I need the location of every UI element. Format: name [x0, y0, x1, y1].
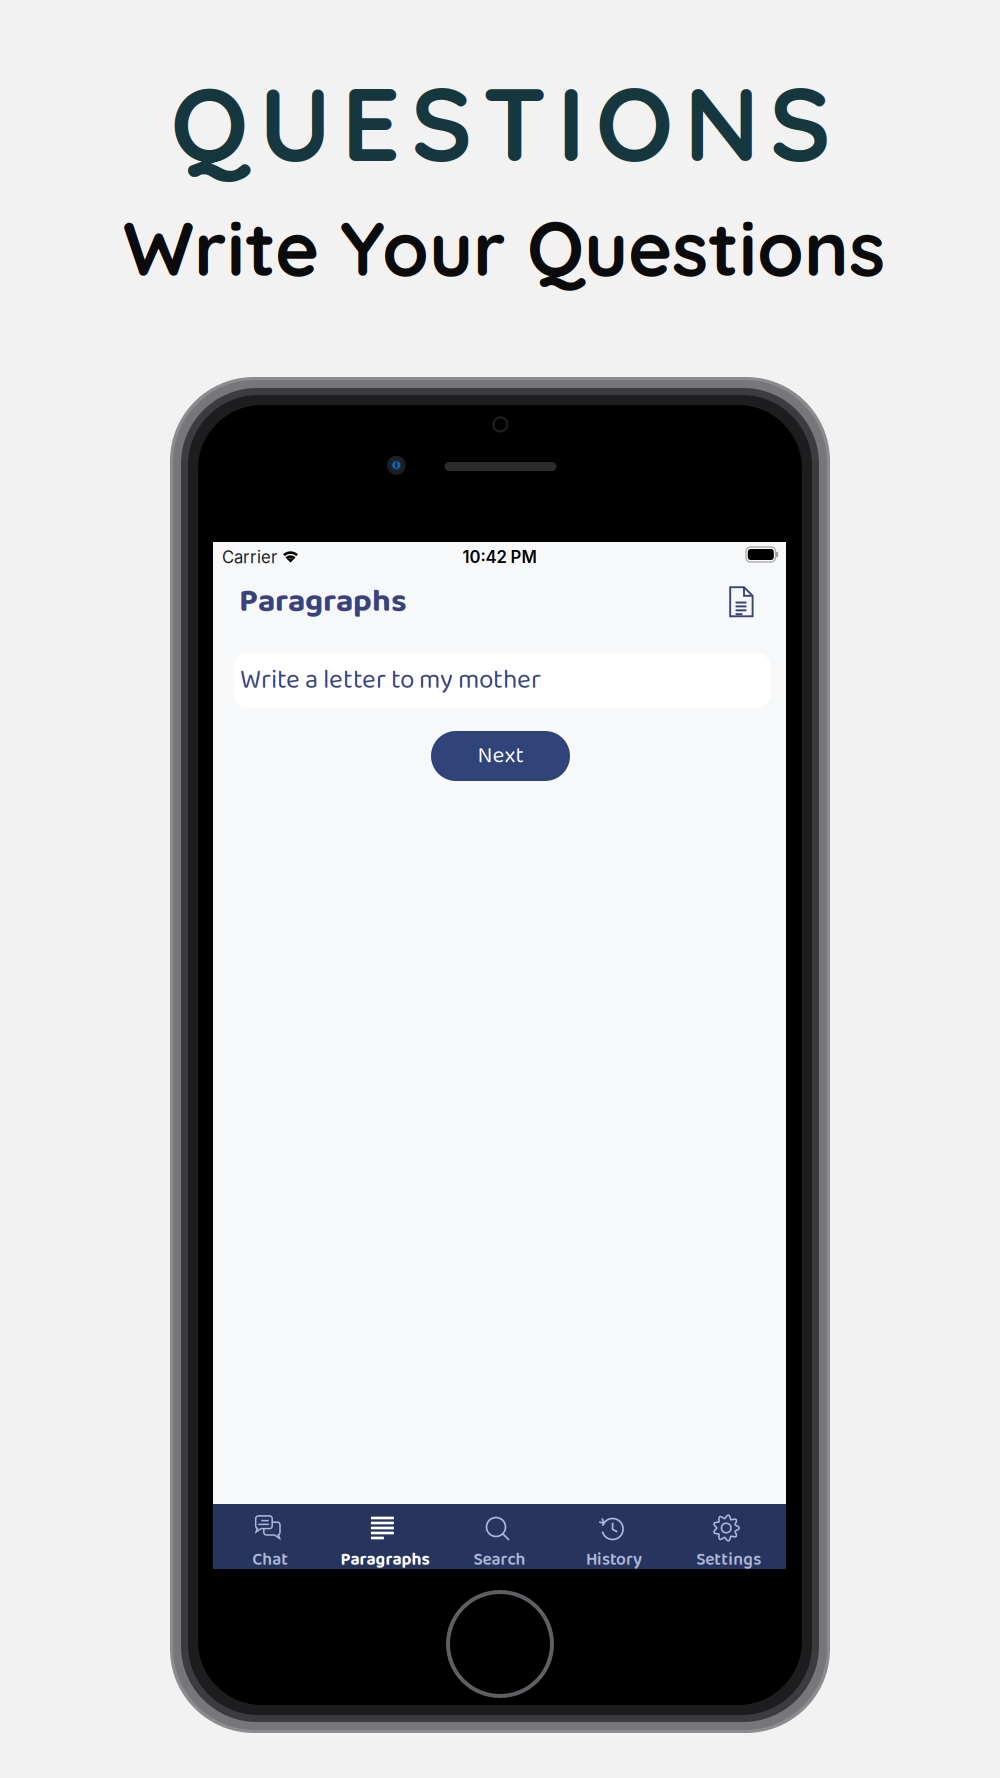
button[interactable]: New document — [715, 576, 767, 628]
staticText: QUESTIONS — [170, 58, 830, 187]
button[interactable]: Write a letter to my mother — [234, 653, 770, 708]
staticText: Paragraphs — [340, 1546, 429, 1574]
staticText: Search — [473, 1546, 525, 1574]
button[interactable]: History — [557, 1504, 671, 1569]
button[interactable]: Search — [442, 1504, 557, 1569]
button[interactable]: Settings — [671, 1504, 786, 1569]
staticText: Carrier — [222, 547, 277, 567]
button[interactable]: Next — [431, 731, 570, 781]
staticText: Paragraphs — [239, 575, 407, 628]
button[interactable]: Paragraphs — [328, 1504, 442, 1569]
staticText: Chat — [252, 1546, 288, 1574]
staticText: Write Your Questions — [123, 200, 885, 294]
staticText: History — [586, 1546, 642, 1574]
staticText: Settings — [696, 1546, 761, 1574]
staticText: Write a letter to my mother — [240, 660, 541, 701]
staticText: 10:42 PM — [462, 547, 536, 567]
staticText: Next — [477, 738, 523, 774]
button[interactable]: Chat — [213, 1504, 328, 1569]
